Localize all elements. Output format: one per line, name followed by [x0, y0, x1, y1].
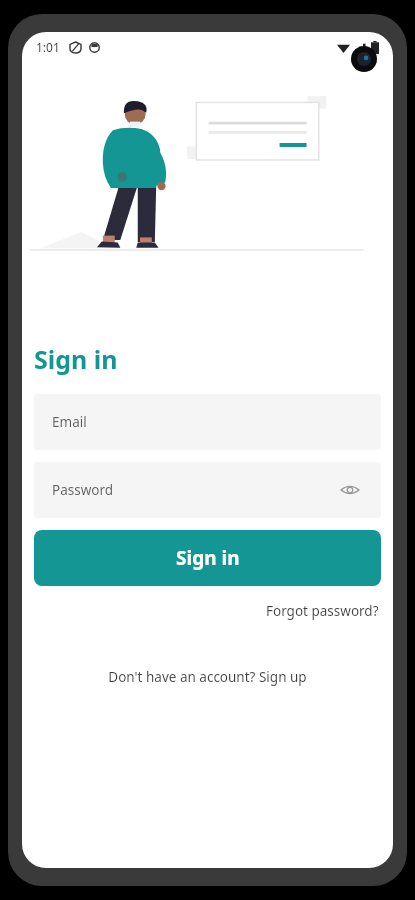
button[interactable]: Show password [337, 477, 363, 503]
button[interactable]: Password [34, 462, 381, 518]
button[interactable]: Email [34, 394, 381, 450]
staticText: Email [52, 413, 87, 431]
staticText: Password [52, 481, 114, 499]
staticText: Sign in [176, 545, 240, 571]
staticText: Forgot password? [266, 602, 379, 620]
staticText: Sign in [34, 342, 118, 376]
staticText: 1:01 [36, 39, 60, 55]
button[interactable]: Don't have an account? Sign up [104, 664, 311, 690]
staticText: Don't have an account? Sign up [108, 668, 307, 686]
button[interactable]: Sign in [34, 530, 381, 586]
button[interactable]: Forgot password? [264, 598, 381, 624]
